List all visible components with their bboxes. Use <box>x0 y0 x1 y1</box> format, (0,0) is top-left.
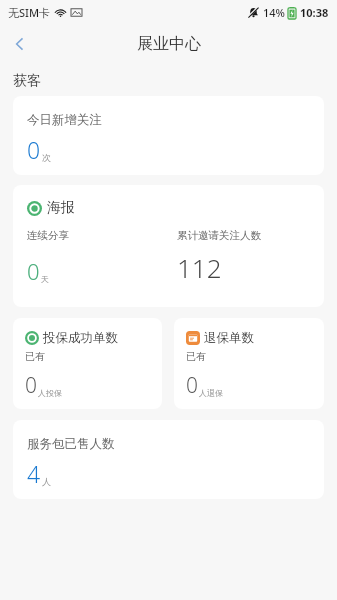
staticText: 0 <box>27 256 40 286</box>
staticText: 服务包已售人数 <box>27 436 115 452</box>
button[interactable]: 服务包已售人数 <box>13 420 324 499</box>
staticText: 10:38 <box>300 5 329 20</box>
staticText: 累计邀请关注人数 <box>177 229 261 242</box>
staticText: 人投保 <box>38 388 62 398</box>
staticText: 14% <box>263 5 285 20</box>
staticText: 人 <box>42 476 51 487</box>
staticText: 0 <box>186 371 198 400</box>
staticText: 获客 <box>13 72 41 90</box>
staticText: 退保单数 <box>204 330 254 346</box>
staticText: 4 <box>27 458 41 489</box>
staticText: 展业中心 <box>137 34 201 54</box>
button[interactable]: 今日新增关注 <box>13 96 324 175</box>
button[interactable]: 海报 <box>13 185 324 307</box>
staticText: 天 <box>41 274 49 284</box>
staticText: 0 <box>25 371 37 400</box>
staticText: 已有 <box>186 350 206 363</box>
button[interactable]: Back <box>0 24 40 64</box>
staticText: 海报 <box>47 199 75 217</box>
staticText: 投保成功单数 <box>43 330 118 346</box>
staticText: 无SIM卡 <box>8 5 51 20</box>
staticText: 已有 <box>25 350 45 363</box>
button[interactable]: 退保单数 <box>174 318 324 409</box>
staticText: 人退保 <box>199 388 223 398</box>
button[interactable]: 投保成功单数 <box>13 318 162 409</box>
staticText: 今日新增关注 <box>27 112 102 128</box>
staticText: 112 <box>177 250 222 285</box>
staticText: 连续分享 <box>27 229 69 242</box>
staticText: 0 <box>27 134 41 165</box>
staticText: 次 <box>42 152 51 163</box>
